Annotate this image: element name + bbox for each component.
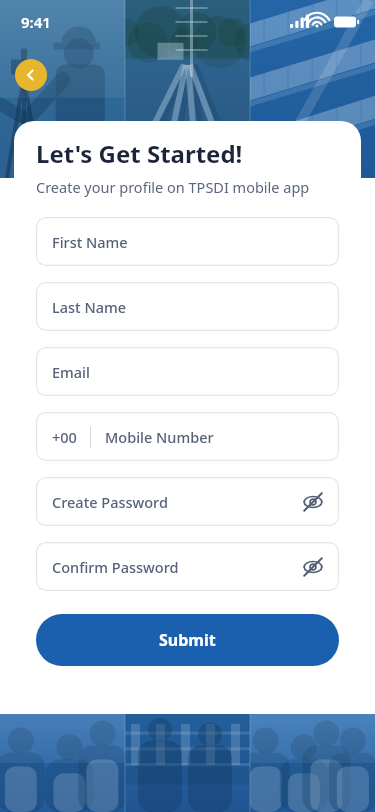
staticText: Create your profile on TPSDI mobile app [36, 177, 310, 197]
staticText: Email [52, 362, 90, 382]
button[interactable]: Last Name [36, 282, 339, 331]
staticText: Let's Get Started! [36, 137, 243, 170]
button[interactable]: +00 [36, 412, 339, 461]
staticText: Create Password [52, 492, 168, 512]
button[interactable]: First Name [36, 217, 339, 266]
staticText: Last Name [52, 297, 127, 317]
staticText: Submit [159, 629, 216, 651]
staticText: 9:41 [21, 12, 51, 32]
staticText: Mobile Number [105, 427, 214, 447]
staticText: Confirm Password [52, 557, 179, 577]
button[interactable]: Submit [36, 614, 339, 666]
button[interactable]: Email [36, 347, 339, 396]
button[interactable]: Create Password [36, 477, 339, 526]
button[interactable]: Back [15, 59, 47, 91]
button[interactable]: Toggle password visibility [299, 488, 327, 516]
staticText: First Name [52, 232, 128, 252]
staticText: +00 [52, 427, 77, 447]
button[interactable]: Confirm Password [36, 542, 339, 591]
button[interactable]: Toggle password visibility [299, 553, 327, 581]
